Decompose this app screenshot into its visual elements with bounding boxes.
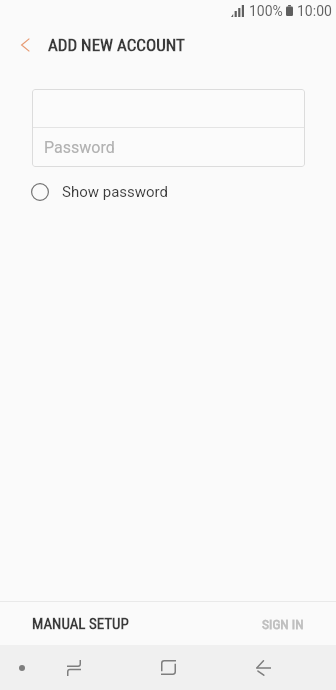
button[interactable]: Navigate up [3, 22, 48, 67]
button[interactable]: Password [32, 128, 305, 167]
button[interactable]: Show password [24, 178, 169, 206]
staticText: MANUAL SETUP [32, 615, 129, 633]
button[interactable] [32, 89, 305, 127]
button[interactable]: MANUAL SETUP [0, 602, 168, 645]
button[interactable]: Home [144, 645, 192, 690]
staticText: Show password [62, 183, 169, 201]
button[interactable]: Recent apps [50, 645, 98, 690]
button[interactable]: Back [239, 645, 287, 690]
staticText: SIGN IN [262, 616, 304, 632]
staticText: ADD NEW ACCOUNT [48, 35, 185, 55]
staticText: 10:00 [297, 3, 332, 19]
staticText: Password [44, 138, 115, 157]
button[interactable]: SIGN IN [168, 602, 336, 645]
button[interactable]: Notifications [0, 645, 43, 690]
staticText: 100% [249, 3, 283, 19]
